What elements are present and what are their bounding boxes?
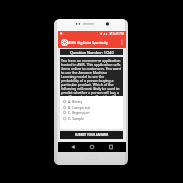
staticText: You have an ecommerce application hosted… — [61, 58, 121, 96]
staticText: A. Binary — [68, 99, 83, 104]
button[interactable]: B. Categorical — [60, 104, 123, 110]
staticText: SUBMIT YOUR ANSWER — [75, 133, 109, 137]
button[interactable]: AWS BigData Specialty — [58, 36, 126, 48]
button[interactable]: D. Sample — [60, 115, 123, 121]
button[interactable]: Recents — [107, 142, 114, 152]
button[interactable]: More options — [120, 36, 124, 48]
staticText: C. Regression — [68, 110, 90, 115]
staticText: D. Sample — [68, 116, 84, 121]
button[interactable]: Home — [88, 142, 95, 152]
staticText: Question Number: 1/240 — [70, 50, 114, 55]
button[interactable]: A. Binary — [60, 98, 123, 104]
button[interactable]: SUBMIT YOUR ANSWER — [60, 131, 123, 139]
button[interactable]: C. Regression — [60, 109, 123, 115]
staticText: 12:45 PM — [111, 32, 125, 36]
staticText: B. Categorical — [68, 105, 90, 110]
staticText: AWS BigData Specialty — [68, 40, 109, 45]
button[interactable]: Back — [69, 142, 76, 152]
